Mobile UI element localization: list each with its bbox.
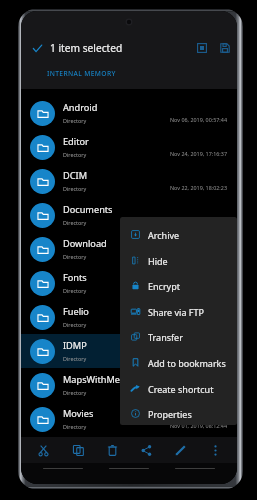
button[interactable]: MapsWithMe xyxy=(21,368,237,402)
button[interactable]: Archive xyxy=(120,221,237,247)
staticText: Fuelio xyxy=(63,305,89,318)
staticText: Nov 06, 2019, 00:57:44 xyxy=(170,116,227,123)
staticText: Fonts xyxy=(63,271,87,284)
button[interactable]: Editor xyxy=(21,130,237,164)
staticText: Nov 05, 2019, 12:03:18 xyxy=(170,354,227,361)
button[interactable]: More options xyxy=(203,438,227,462)
button[interactable]: Recents xyxy=(43,463,83,473)
button[interactable]: Hide xyxy=(120,247,237,273)
staticText: Android xyxy=(63,101,98,114)
button[interactable]: Add to bookmarks xyxy=(120,349,237,375)
staticText: Transfer xyxy=(148,331,183,343)
staticText: DCIM xyxy=(63,169,87,182)
button[interactable]: Share via FTP xyxy=(120,298,237,324)
button[interactable]: Documents xyxy=(21,198,237,232)
button[interactable]: Movies xyxy=(21,402,237,436)
staticText: Nov 01, 2019, 08:12:44 xyxy=(170,422,227,429)
button[interactable]: Android xyxy=(21,96,237,130)
button[interactable]: Home xyxy=(109,463,149,473)
staticText: Directory xyxy=(63,185,87,192)
button[interactable]: Fonts xyxy=(21,266,237,300)
staticText: Nov 22, 2019, 18:02:23 xyxy=(170,184,227,191)
button[interactable]: Save selection xyxy=(214,37,235,58)
button[interactable]: Copy xyxy=(66,438,90,462)
button[interactable]: Delete xyxy=(100,438,124,462)
button[interactable]: Deselect all xyxy=(27,38,48,59)
button[interactable]: Properties xyxy=(120,400,237,425)
staticText: Directory xyxy=(63,219,87,226)
staticText: Directory xyxy=(63,151,87,158)
button[interactable]: Download xyxy=(21,232,237,266)
staticText: Archive xyxy=(148,229,180,241)
staticText: Properties xyxy=(148,408,192,420)
staticText: Nov 02, 2019, 19:55:02 xyxy=(170,388,227,395)
staticText: IDMP xyxy=(63,339,87,352)
button[interactable]: DCIM xyxy=(21,164,237,198)
staticText: Movies xyxy=(63,407,94,420)
button[interactable]: Transfer xyxy=(120,323,237,349)
staticText: Directory xyxy=(63,423,87,430)
staticText: Directory xyxy=(63,287,87,294)
staticText: MapsWithMe xyxy=(63,373,120,386)
staticText: Hide xyxy=(148,255,168,267)
button[interactable]: Encrypt xyxy=(120,272,237,298)
staticText: Editor xyxy=(63,135,89,148)
button[interactable]: Rename xyxy=(168,438,192,462)
staticText: Create shortcut xyxy=(148,383,214,395)
button[interactable]: Create shortcut xyxy=(120,375,237,401)
button[interactable]: Back xyxy=(175,463,215,473)
staticText: Download xyxy=(63,237,107,250)
staticText: Nov 11, 2019, 21:44:10 xyxy=(170,286,227,293)
staticText: Directory xyxy=(63,355,87,362)
staticText: Directory xyxy=(63,253,87,260)
staticText: Share via FTP xyxy=(148,306,204,318)
staticText: 1 item selected xyxy=(50,41,123,55)
button[interactable]: Fuelio xyxy=(21,300,237,334)
staticText: Directory xyxy=(63,117,87,124)
button[interactable]: IDMP xyxy=(21,334,237,368)
staticText: Documents xyxy=(63,203,113,216)
button[interactable]: Share xyxy=(134,438,158,462)
staticText: Directory xyxy=(63,389,87,396)
staticText: Nov 24, 2019, 17:16:37 xyxy=(170,150,227,157)
button[interactable]: Select all xyxy=(191,37,212,58)
button[interactable]: Cut xyxy=(31,438,55,462)
staticText: Add to bookmarks xyxy=(148,357,226,369)
staticText: Encrypt xyxy=(148,280,180,292)
staticText: Directory xyxy=(63,321,87,328)
button[interactable]: INTERNAL MEMORY xyxy=(47,69,116,78)
